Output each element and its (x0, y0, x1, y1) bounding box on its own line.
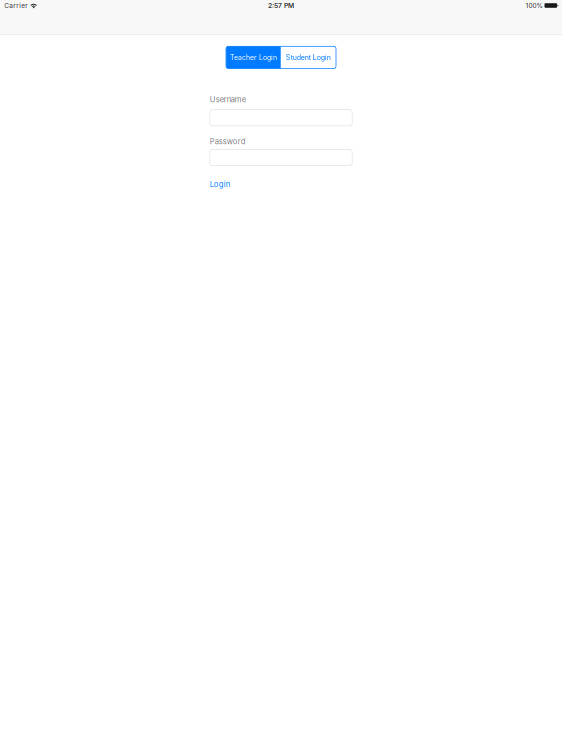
button[interactable]: Login (210, 180, 231, 189)
staticText: Student Login (286, 53, 331, 62)
button[interactable]: Teacher Login (226, 46, 281, 68)
staticText: Carrier (4, 1, 27, 9)
staticText: 2:57 PM (268, 1, 294, 10)
button[interactable]: Username (210, 110, 352, 126)
staticText: Login (210, 180, 231, 189)
button[interactable]: Student Login (281, 46, 336, 68)
staticText: Username (210, 95, 246, 104)
staticText: Password (210, 137, 246, 146)
button[interactable]: Password (210, 149, 352, 166)
staticText: 100% (525, 1, 542, 9)
staticText: Teacher Login (230, 53, 277, 62)
